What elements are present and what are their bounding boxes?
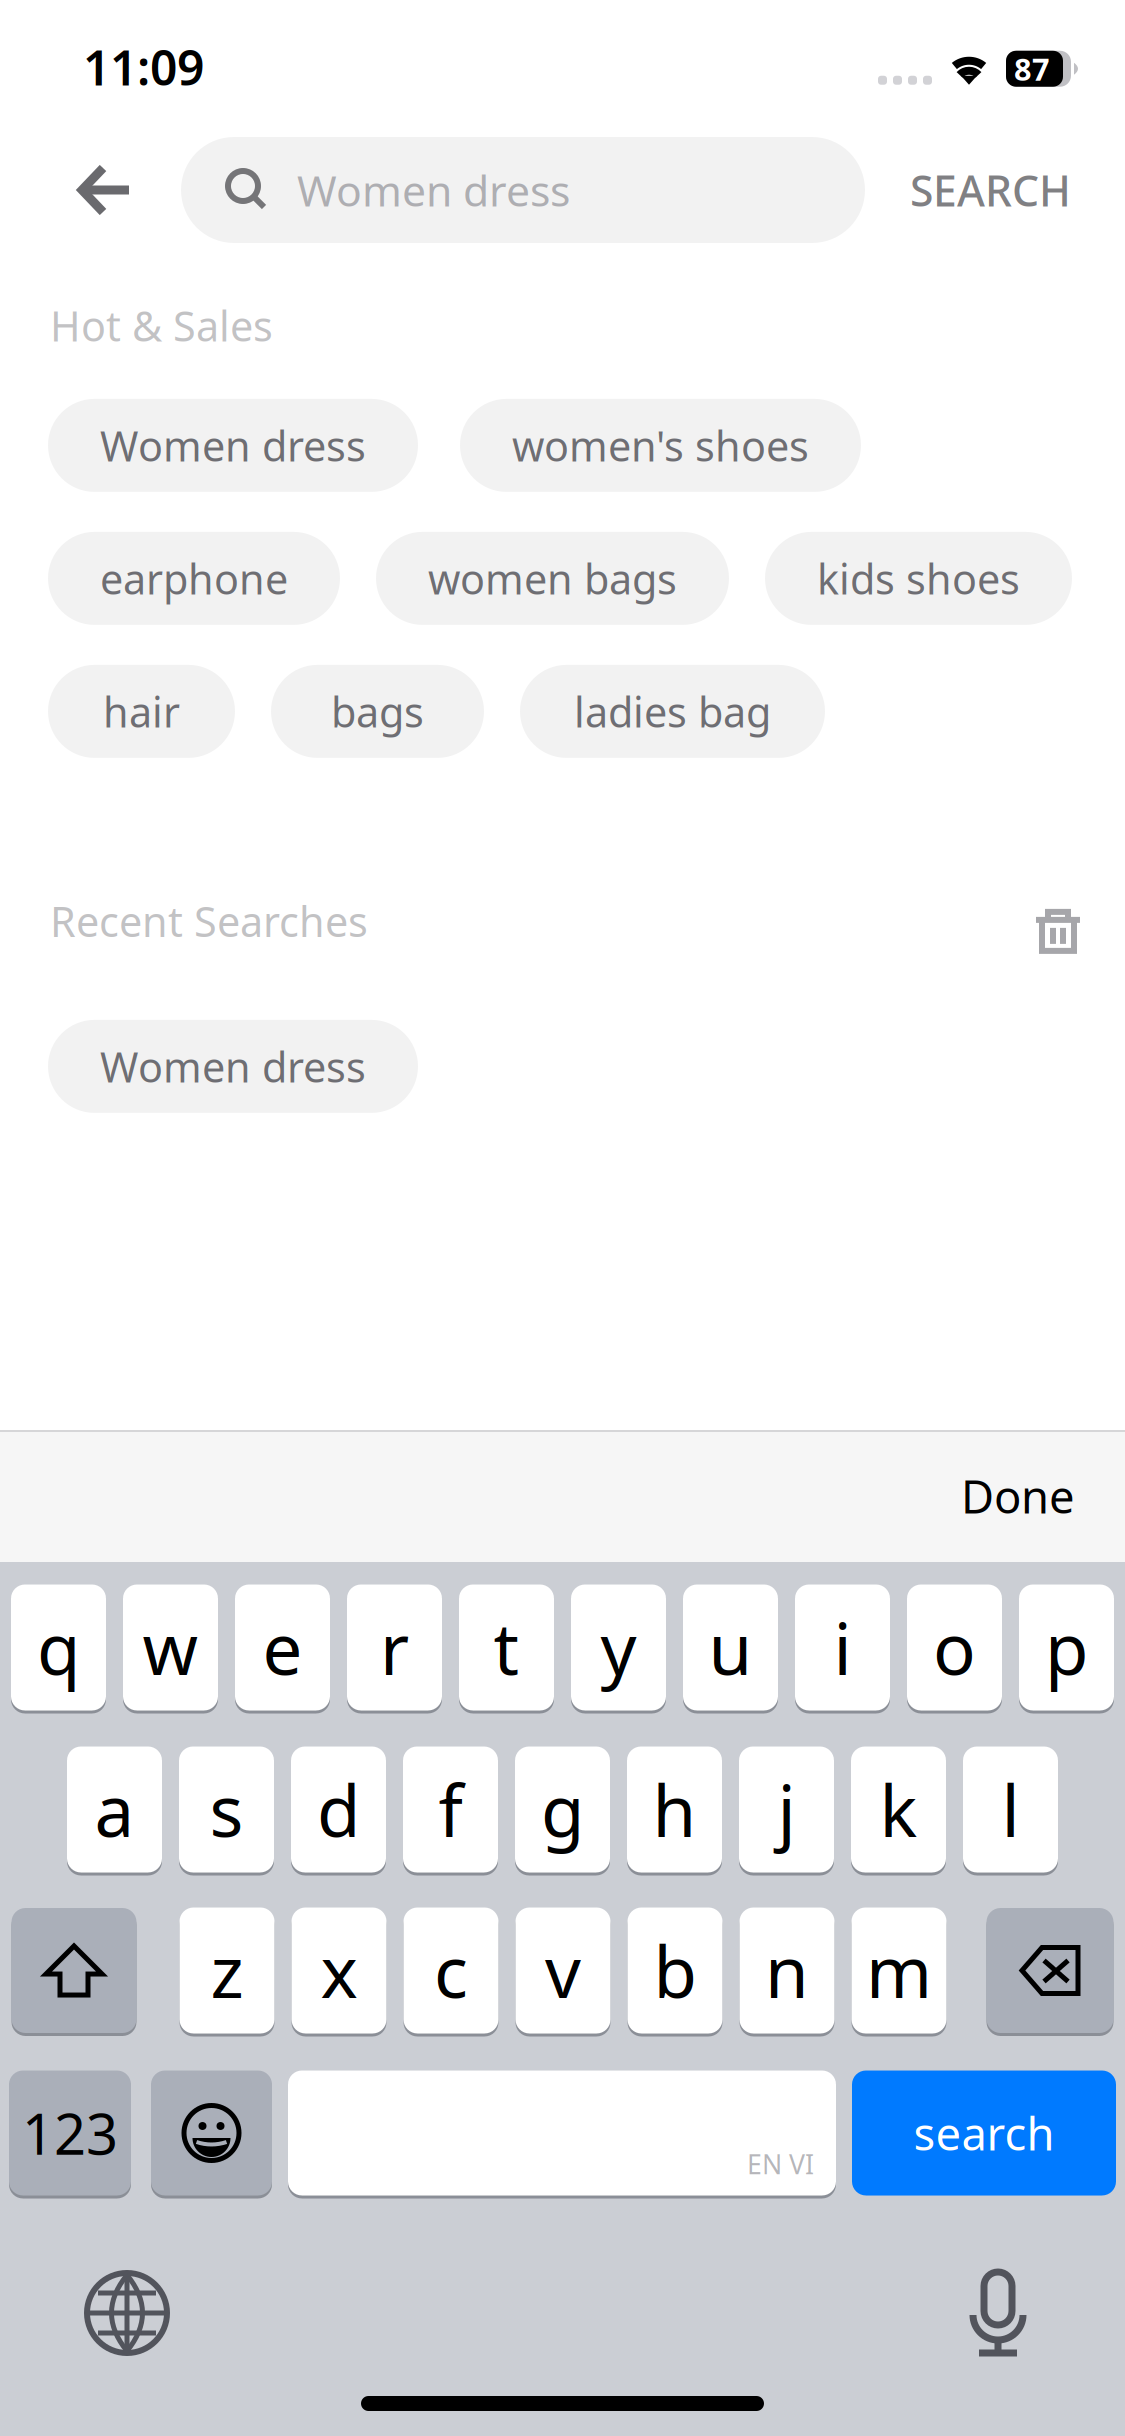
staticText: women's shoes [512, 418, 809, 473]
button[interactable]: Switch keyboard [85, 2271, 169, 2355]
button[interactable]: bags [271, 665, 484, 758]
staticText: k [879, 1763, 917, 1856]
staticText: d [317, 1763, 360, 1856]
button[interactable]: x [291, 1906, 386, 2035]
staticText: t [493, 1601, 519, 1694]
button[interactable]: Women dress [181, 137, 865, 243]
staticText: y [600, 1601, 636, 1694]
staticText: Women dress [100, 1039, 366, 1094]
button[interactable]: i [795, 1583, 890, 1712]
staticText: i [833, 1601, 851, 1694]
staticText: search [913, 2103, 1054, 2163]
button[interactable]: search [852, 2069, 1116, 2197]
staticText: r [380, 1601, 409, 1694]
button[interactable]: m [851, 1906, 946, 2035]
button[interactable]: b [627, 1906, 722, 2035]
button[interactable]: g [515, 1745, 610, 1874]
button[interactable]: Done [943, 1431, 1093, 1561]
staticText: Hot & Sales [50, 298, 273, 353]
button[interactable]: ladies bag [520, 665, 825, 758]
button[interactable]: c [403, 1906, 498, 2035]
staticText: kids shoes [817, 551, 1020, 606]
staticText: z [210, 1924, 243, 2017]
button[interactable]: q [11, 1583, 106, 1712]
button[interactable]: a [67, 1745, 162, 1874]
button[interactable]: women's shoes [460, 399, 861, 492]
button[interactable]: u [683, 1583, 778, 1712]
staticText: m [866, 1924, 932, 2017]
staticText: s [209, 1763, 243, 1856]
staticText: SEARCH [910, 162, 1071, 218]
staticText: EN VI [747, 2146, 814, 2181]
staticText: 87 [1014, 48, 1050, 89]
button[interactable]: Emoji [151, 2069, 272, 2197]
staticText: v [545, 1924, 581, 2017]
staticText: Women dress [100, 418, 366, 473]
staticText: x [320, 1924, 357, 2017]
button[interactable]: Clear recent searches [1033, 885, 1083, 957]
button[interactable]: t [459, 1583, 554, 1712]
button[interactable]: hair [48, 665, 235, 758]
staticText: earphone [100, 551, 288, 606]
button[interactable]: j [739, 1745, 834, 1874]
staticText: u [708, 1601, 752, 1694]
button[interactable]: l [963, 1745, 1058, 1874]
button[interactable]: v [515, 1906, 610, 2035]
button[interactable]: o [907, 1583, 1002, 1712]
button[interactable]: p [1019, 1583, 1114, 1712]
staticText: q [37, 1601, 80, 1694]
button[interactable]: Women dress [48, 1020, 418, 1113]
button[interactable]: k [851, 1745, 946, 1874]
staticText: j [777, 1763, 795, 1856]
button[interactable]: d [291, 1745, 386, 1874]
button[interactable]: Dictate [970, 2270, 1026, 2356]
button[interactable]: h [627, 1745, 722, 1874]
button[interactable]: s [179, 1745, 274, 1874]
staticText: g [541, 1763, 584, 1856]
button[interactable]: earphone [48, 532, 340, 625]
button[interactable]: n [739, 1906, 834, 2035]
staticText: e [262, 1601, 302, 1694]
staticText: w [142, 1601, 198, 1694]
button[interactable]: w [123, 1583, 218, 1712]
staticText: 11:09 [83, 35, 204, 99]
staticText: bags [331, 684, 424, 739]
button[interactable]: f [403, 1745, 498, 1874]
staticText: f [438, 1763, 462, 1856]
staticText: c [434, 1924, 468, 2017]
staticText: l [1001, 1763, 1019, 1856]
staticText: b [653, 1924, 696, 2017]
staticText: 123 [22, 2096, 118, 2170]
button[interactable]: r [347, 1583, 442, 1712]
staticText: hair [103, 684, 180, 739]
button[interactable]: Shift [11, 1906, 136, 2034]
button[interactable]: e [235, 1583, 330, 1712]
staticText: Recent Searches [50, 893, 368, 948]
button[interactable]: Women dress [48, 399, 418, 492]
button[interactable]: SEARCH [890, 137, 1091, 243]
staticText: o [933, 1601, 976, 1694]
button[interactable]: z [179, 1906, 274, 2035]
button[interactable]: y [571, 1583, 666, 1712]
staticText: Done [961, 1466, 1075, 1526]
button[interactable]: women bags [376, 532, 729, 625]
button[interactable]: kids shoes [765, 532, 1072, 625]
staticText: a [94, 1763, 134, 1856]
staticText: Women dress [297, 162, 570, 218]
staticText: women bags [428, 551, 677, 606]
button[interactable]: EN VI [288, 2069, 836, 2197]
staticText: ladies bag [574, 684, 771, 739]
staticText: h [652, 1763, 696, 1856]
button[interactable]: Back [52, 137, 158, 243]
staticText: p [1045, 1601, 1088, 1694]
button[interactable]: 123 [9, 2069, 131, 2197]
button[interactable]: Delete [986, 1906, 1113, 2034]
staticText: n [765, 1924, 809, 2017]
